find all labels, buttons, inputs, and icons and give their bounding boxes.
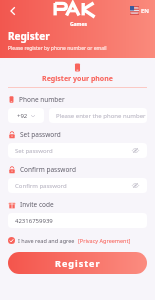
button[interactable]: [Privacy Agreement] [78,237,131,244]
button[interactable]: Register [8,252,147,274]
staticText: Set password [20,130,61,139]
button[interactable]: 42316759939 [8,213,147,228]
button[interactable]: Show password [131,181,140,190]
button[interactable]: Back [4,2,22,20]
staticText: Phone number [19,95,65,104]
staticText: I have read and agree [18,237,75,244]
button[interactable]: +92 [8,108,44,123]
button[interactable]: I have read and agree [8,237,147,244]
button[interactable]: Set password [8,143,147,158]
staticText: Confirm password [15,182,67,190]
button[interactable]: Language [130,6,149,15]
staticText: Please enter the phone number [56,112,146,120]
button[interactable]: Please enter the phone number [49,108,147,123]
staticText: Register [8,29,50,43]
staticText: EN [141,7,149,15]
staticText: 42316759939 [15,217,53,225]
staticText: +92 [17,112,28,120]
staticText: Set password [15,147,53,155]
staticText: Please register by phone number or email [8,45,107,52]
button[interactable]: Show password [131,146,140,155]
staticText: Games [70,21,87,28]
staticText: Invite code [20,200,54,209]
staticText: Register [55,257,101,269]
staticText: Confirm password [20,165,76,174]
button[interactable]: Confirm password [8,178,147,193]
staticText: Register your phone [8,74,147,84]
